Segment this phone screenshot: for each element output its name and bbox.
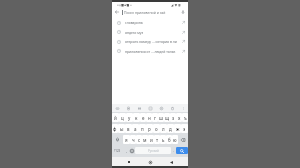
button[interactable]: яндекс муз <box>112 27 188 37</box>
button[interactable]: ю <box>172 135 178 144</box>
staticText: ь <box>162 137 165 143</box>
button[interactable]: открыть камеру ... история в ли <box>112 37 188 46</box>
staticText: ы <box>120 126 124 132</box>
button[interactable]: ц <box>119 113 126 122</box>
button[interactable]: х <box>176 113 182 122</box>
button[interactable]: я <box>123 135 130 144</box>
button[interactable]: ф <box>112 124 118 133</box>
staticText: словарина <box>125 20 143 25</box>
staticText: ю <box>173 137 177 143</box>
button[interactable]: Period <box>171 147 176 154</box>
button[interactable]: Comma <box>123 147 129 154</box>
staticText: п <box>141 126 144 132</box>
button[interactable]: п <box>139 124 146 133</box>
staticText: с <box>138 137 141 143</box>
button[interactable]: Back <box>112 8 122 16</box>
button[interactable]: приложения от ... людей тольк <box>112 46 188 56</box>
button[interactable]: а <box>132 124 139 133</box>
staticText: г <box>154 115 156 121</box>
staticText: Русский <box>148 149 159 153</box>
button[interactable]: т <box>154 135 160 144</box>
button[interactable]: Home <box>146 158 154 166</box>
button[interactable]: ш <box>158 113 164 122</box>
button[interactable]: з <box>170 113 176 122</box>
staticText: к <box>135 115 138 121</box>
button[interactable]: к <box>133 113 140 122</box>
staticText: р <box>148 126 151 132</box>
button[interactable]: ?123 <box>112 147 123 154</box>
button[interactable]: Themes <box>124 104 132 112</box>
button[interactable]: у <box>126 113 133 122</box>
button[interactable]: е <box>140 113 146 122</box>
staticText: , <box>126 148 127 153</box>
button[interactable]: Backspace <box>178 135 188 144</box>
staticText: щ <box>165 115 170 121</box>
button[interactable]: э <box>181 124 188 133</box>
staticText: и <box>150 137 153 143</box>
staticText: ч <box>132 137 135 143</box>
staticText: ш <box>159 115 163 121</box>
button[interactable]: Search <box>176 147 188 154</box>
staticText: т <box>156 137 159 143</box>
button[interactable]: в <box>125 124 132 133</box>
button[interactable]: Keyboard <box>113 104 121 112</box>
button[interactable]: р <box>146 124 153 133</box>
staticText: яндекс муз <box>125 30 144 35</box>
button[interactable]: о <box>153 124 160 133</box>
staticText: ф <box>113 126 117 132</box>
staticText: . <box>173 148 174 153</box>
staticText: б <box>168 137 171 143</box>
staticText: й <box>114 115 117 121</box>
staticText: я <box>125 137 128 143</box>
button[interactable]: ъ <box>182 113 188 122</box>
button[interactable]: м <box>142 135 148 144</box>
button[interactable]: й <box>112 113 119 122</box>
button[interactable]: л <box>160 124 167 133</box>
staticText: у <box>128 115 131 121</box>
button[interactable]: ж <box>174 124 181 133</box>
button[interactable]: GIF <box>135 104 143 112</box>
button[interactable]: Back <box>167 158 175 166</box>
staticText: Поиск приложений и сай <box>124 10 166 15</box>
button[interactable]: и <box>148 135 154 144</box>
staticText: в <box>127 126 130 132</box>
button[interactable]: Settings <box>157 104 165 112</box>
staticText: э <box>183 126 186 132</box>
staticText: з <box>172 115 175 121</box>
staticText: х <box>178 115 181 121</box>
button[interactable]: н <box>146 113 152 122</box>
staticText: о <box>155 126 158 132</box>
staticText: м <box>143 137 147 143</box>
button[interactable]: словарина <box>112 18 188 27</box>
staticText: открыть камеру ... история в ли <box>125 39 177 44</box>
staticText: приложения от ... людей тольк <box>125 49 176 54</box>
staticText: л <box>162 126 165 132</box>
button[interactable]: ь <box>160 135 166 144</box>
staticText: д <box>169 126 172 132</box>
staticText: а <box>134 126 137 132</box>
button[interactable]: ч <box>130 135 136 144</box>
button[interactable]: б <box>166 135 172 144</box>
staticText: ж <box>176 126 180 132</box>
button[interactable]: Voice search <box>178 8 188 16</box>
button[interactable]: Space <box>135 147 171 154</box>
button[interactable]: More options <box>179 104 187 112</box>
button[interactable]: щ <box>164 113 170 122</box>
button[interactable]: д <box>167 124 174 133</box>
staticText: ?123 <box>114 149 121 153</box>
staticText: е <box>142 115 145 121</box>
button[interactable]: с <box>136 135 142 144</box>
staticText: ъ <box>184 115 187 121</box>
staticText: н <box>148 115 151 121</box>
button[interactable]: г <box>152 113 158 122</box>
button[interactable]: Clipboard <box>168 104 176 112</box>
button[interactable]: Shift <box>112 135 123 144</box>
button[interactable]: Recents <box>125 158 133 166</box>
button[interactable]: Emoji <box>129 147 135 154</box>
button[interactable]: ы <box>118 124 125 133</box>
button[interactable]: Stickers <box>146 104 154 112</box>
staticText: ц <box>121 115 124 121</box>
